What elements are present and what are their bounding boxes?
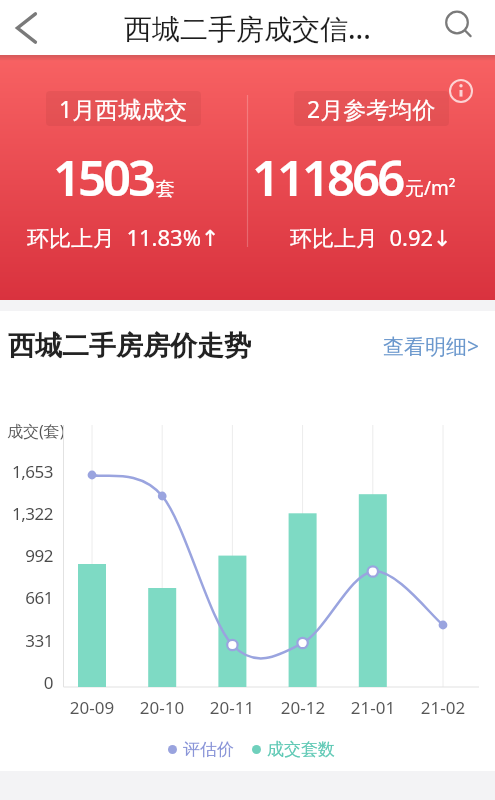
staticText: 20-10	[127, 696, 197, 719]
staticText: 西城二手房成交信...	[124, 9, 371, 47]
staticText: 评估价	[183, 739, 234, 760]
button[interactable]	[435, 2, 483, 50]
staticText: 成交(套)	[7, 420, 65, 442]
staticText: 环比上月 0.92↓	[290, 222, 452, 252]
staticText: 1503	[53, 144, 154, 211]
button[interactable]	[5, 4, 53, 52]
staticText: 成交套数	[267, 739, 335, 760]
staticText: 2月参考均价	[307, 93, 436, 124]
staticText: 20-11	[197, 696, 267, 719]
staticText: 661	[0, 586, 53, 609]
button[interactable]	[438, 68, 484, 114]
staticText: 331	[0, 629, 53, 652]
staticText: 20-09	[57, 696, 127, 719]
staticText: 1,653	[0, 460, 53, 483]
staticText: 1,322	[0, 502, 53, 525]
button[interactable]: 1月西城成交	[0, 55, 247, 300]
staticText: 环比上月 11.83%↑	[27, 222, 220, 252]
staticText: 1月西城成交	[59, 93, 188, 124]
staticText: 992	[0, 544, 53, 567]
staticText: 西城二手房房价走势	[8, 329, 251, 363]
button[interactable]: 查看明细>	[383, 332, 480, 361]
button[interactable]: 2月参考均价	[247, 55, 495, 300]
staticText: 查看明细>	[383, 332, 480, 361]
staticText: 元/m²	[405, 175, 456, 201]
staticText: 21-02	[408, 696, 478, 719]
staticText: 21-01	[338, 696, 408, 719]
staticText: 20-12	[268, 696, 338, 719]
staticText: 套	[156, 177, 175, 201]
staticText: 111866	[252, 144, 403, 211]
staticText: 0	[0, 671, 53, 694]
